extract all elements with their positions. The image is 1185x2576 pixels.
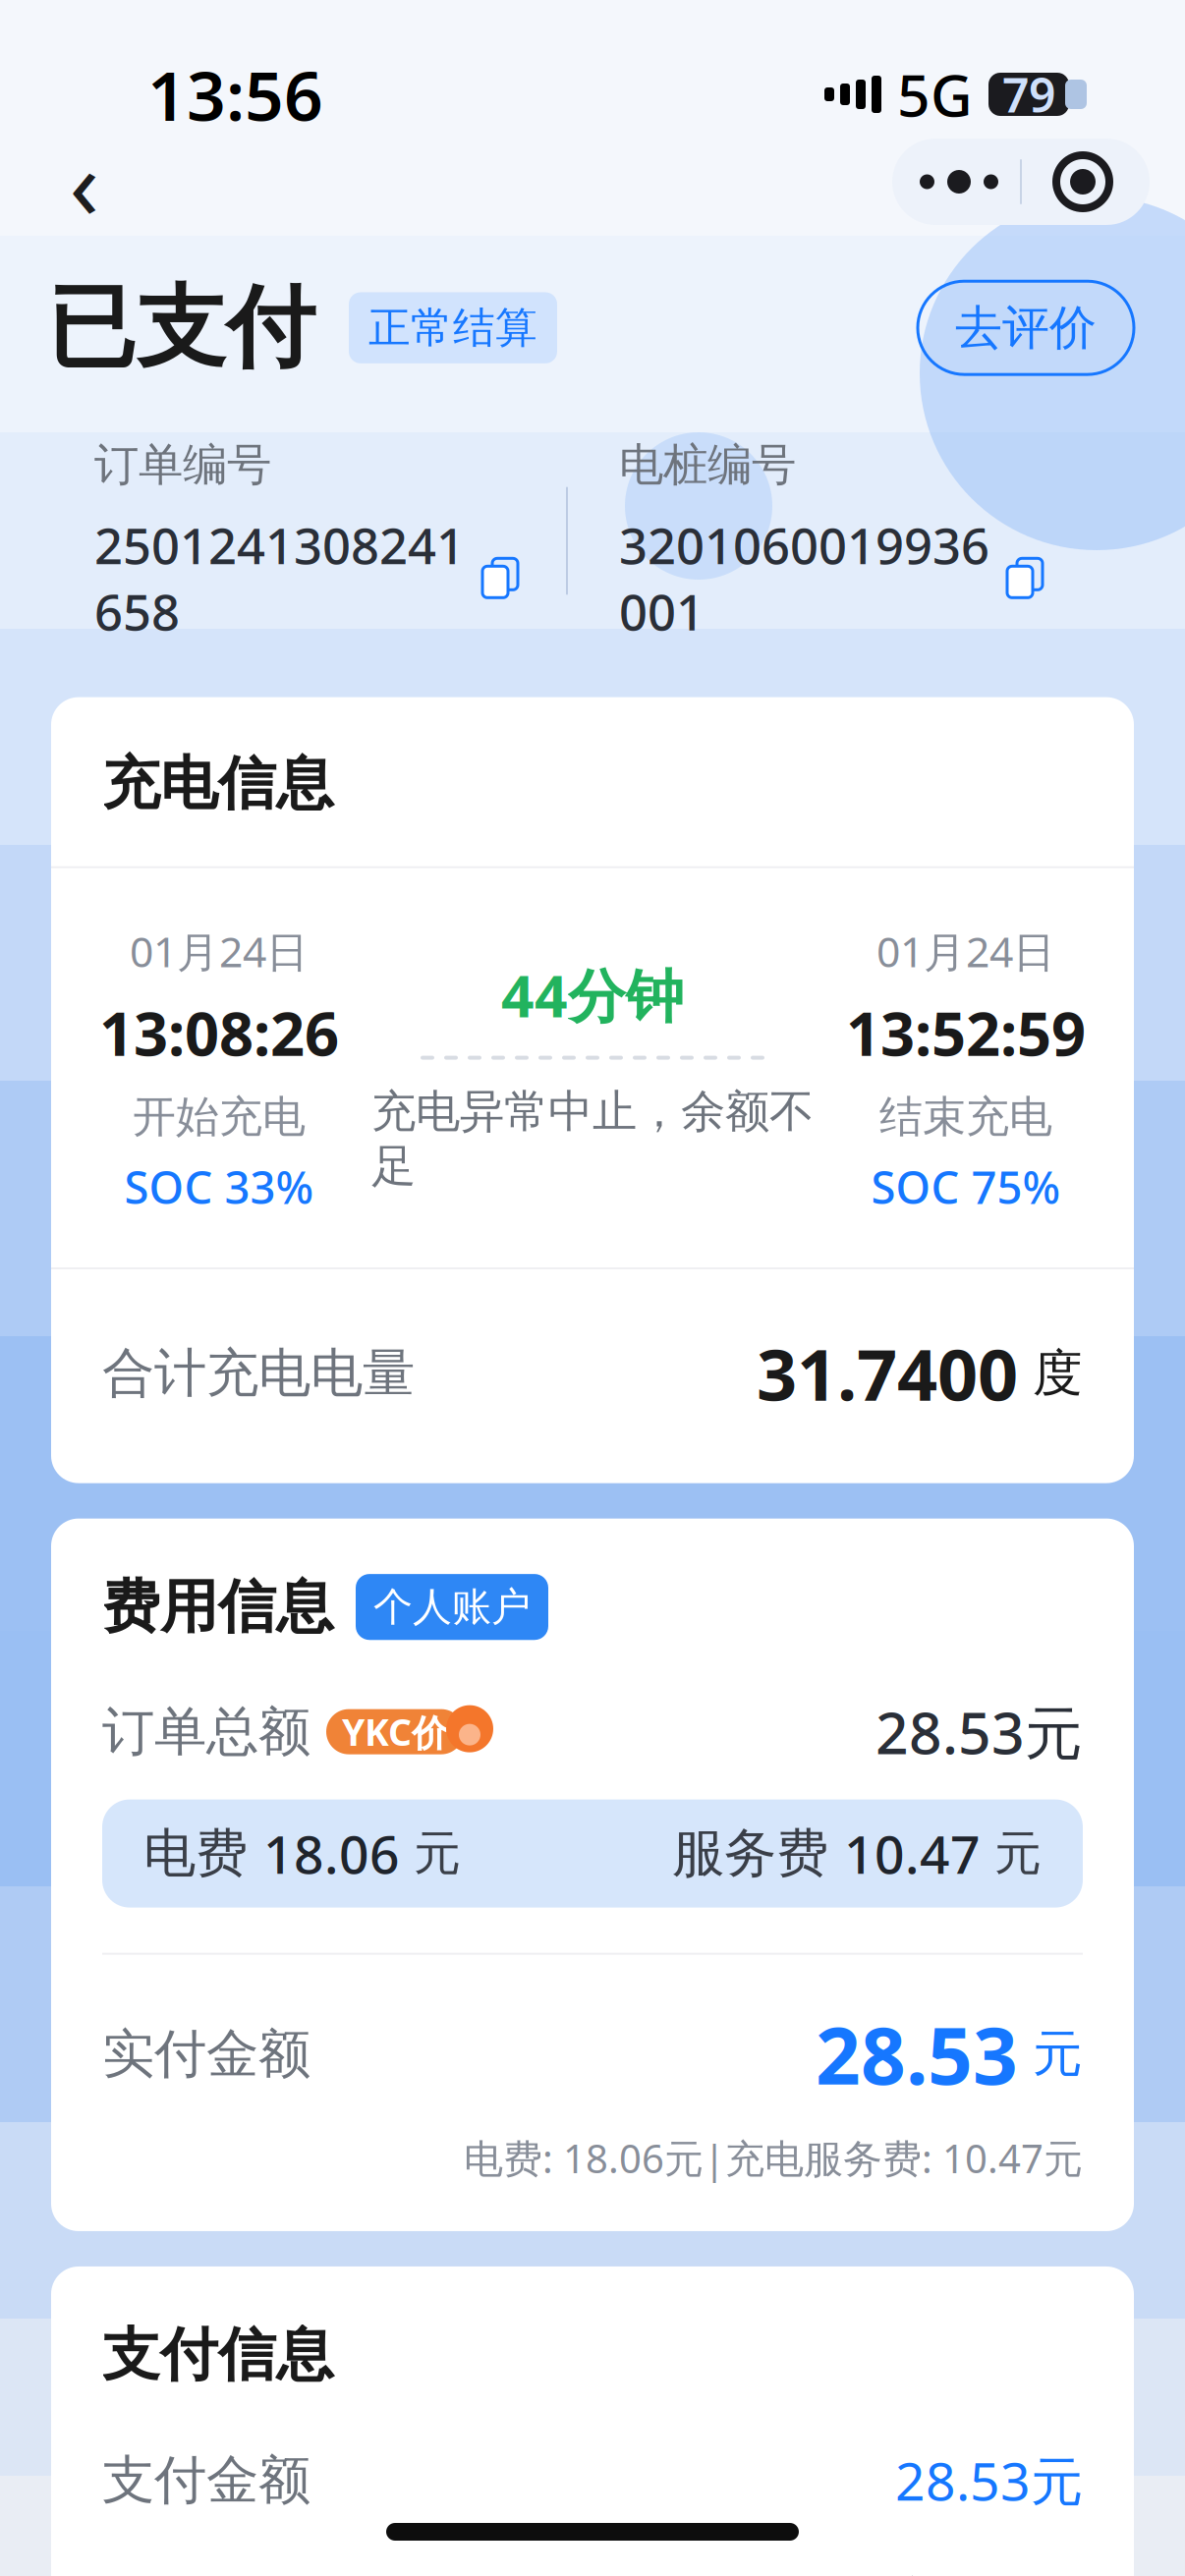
staticText: 已支付	[47, 273, 315, 383]
staticText: 元	[1018, 2023, 1083, 2085]
staticText: 订单编号	[94, 438, 271, 492]
staticText: SOC 75%	[871, 1157, 1061, 1216]
staticText: 去评价	[955, 299, 1097, 357]
button[interactable]: 2501241308241658	[94, 512, 566, 644]
staticText: 充电信息	[102, 748, 334, 819]
staticText: 13:08:26	[99, 993, 339, 1073]
staticText: 充电异常中止，余额不足	[371, 1084, 814, 1194]
staticText: 01月24日	[876, 923, 1055, 979]
staticText: YKC价	[342, 1707, 448, 1756]
staticText: 度	[1018, 1343, 1083, 1404]
staticText: 费用信息	[102, 1572, 334, 1642]
button[interactable]: Back	[35, 133, 134, 231]
staticText: 13:52:59	[846, 993, 1086, 1073]
staticText: 10.47	[844, 1819, 981, 1888]
staticText: 79	[1002, 63, 1055, 126]
staticText: SOC 33%	[124, 1157, 314, 1216]
staticText: 正常结算	[368, 302, 537, 354]
staticText: 支付信息	[102, 2320, 334, 2390]
staticText: ‹	[69, 117, 100, 246]
staticText: 电费: 18.06元|充电服务费: 10.47元	[464, 2132, 1083, 2184]
staticText: 5G	[897, 56, 973, 133]
staticText: 3201060019936001	[619, 512, 989, 644]
button[interactable]: More	[898, 139, 1020, 225]
staticText: 18.06	[263, 1819, 400, 1888]
staticText: 实付金额	[102, 2022, 310, 2086]
staticText: 电桩编号	[619, 438, 796, 492]
staticText: 13:56	[147, 49, 323, 140]
staticText: 服务费	[672, 1821, 844, 1886]
button[interactable]: 3201060019936001	[619, 512, 1091, 644]
staticText: 订单总额	[102, 1700, 310, 1764]
staticText: 结束充电	[879, 1090, 1052, 1143]
staticText: 元	[981, 1825, 1042, 1882]
staticText: 44分钟	[501, 957, 684, 1033]
staticText: 电费	[143, 1821, 263, 1886]
staticText: 2501241308241658	[94, 512, 465, 644]
staticText: 28.53	[816, 2002, 1018, 2106]
staticText: 个人账户	[373, 1583, 531, 1631]
button[interactable]: Close	[1022, 139, 1144, 225]
staticText: 元	[400, 1825, 461, 1882]
staticText: 31.7400	[757, 1326, 1018, 1420]
staticText: 开始充电	[133, 1090, 306, 1143]
staticText: 28.53元	[875, 1693, 1083, 1770]
staticText: 支付金额	[102, 2448, 310, 2512]
staticText: 01月24日	[130, 923, 309, 979]
button[interactable]: 去评价	[918, 281, 1134, 375]
staticText: 合计充电电量	[102, 1341, 415, 1406]
staticText: 28.53元	[895, 2445, 1083, 2515]
